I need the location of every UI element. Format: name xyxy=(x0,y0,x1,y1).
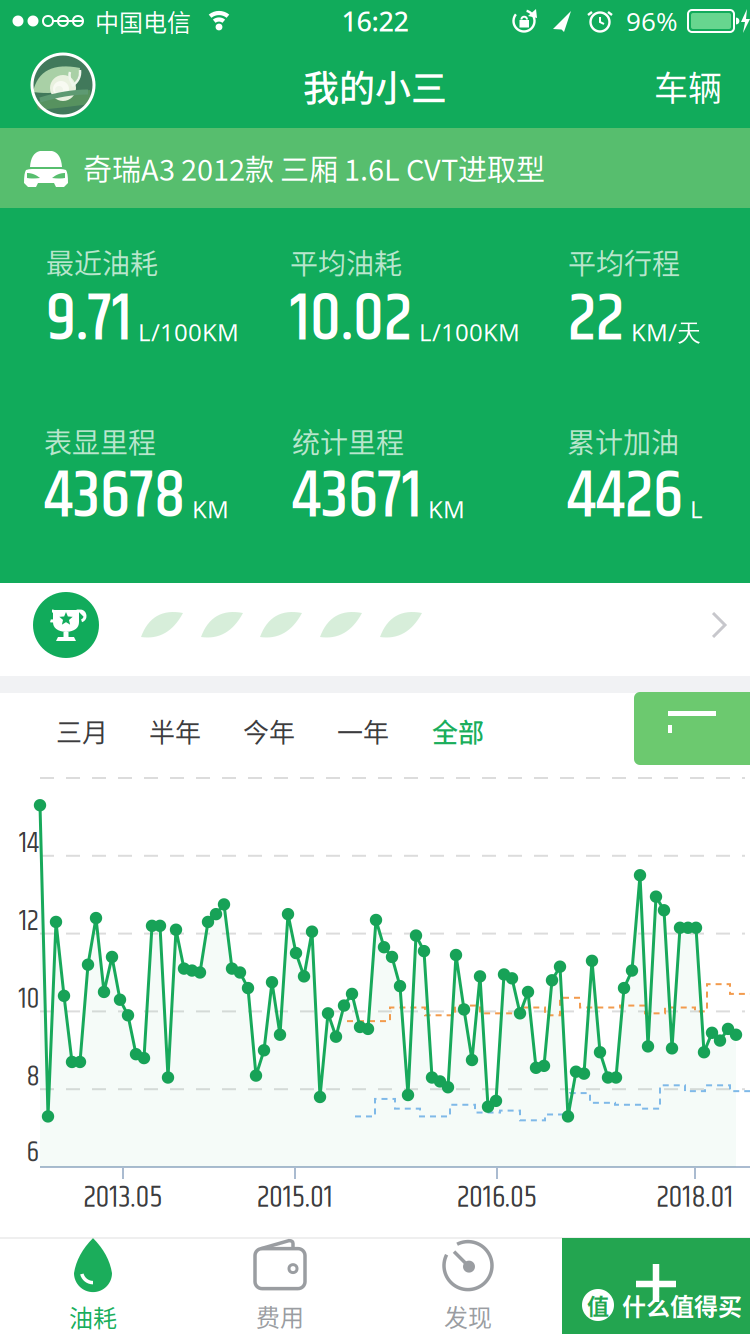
button[interactable]: 添加记录 xyxy=(562,1238,750,1334)
staticText: 43678 xyxy=(44,445,185,549)
button[interactable]: 发现 xyxy=(374,1238,561,1334)
staticText: 值 xyxy=(587,1289,609,1321)
staticText: L xyxy=(690,493,703,525)
staticText: 平均行程 xyxy=(568,242,680,282)
staticText: 2018.01 xyxy=(656,1174,733,1222)
staticText: 16:22 xyxy=(341,3,408,39)
staticText: 2013.05 xyxy=(83,1174,162,1222)
staticText: 43671 xyxy=(292,445,422,549)
staticText: 96% xyxy=(626,3,678,39)
staticText: 10.02 xyxy=(290,268,412,372)
button[interactable]: 成就 xyxy=(0,583,750,667)
staticText: L/100KM xyxy=(419,316,520,348)
staticText: KM xyxy=(192,493,229,525)
button[interactable]: 一年 xyxy=(320,701,406,761)
button[interactable]: 今年 xyxy=(226,701,312,761)
staticText: 6 xyxy=(26,1131,39,1175)
staticText: 今年 xyxy=(243,712,295,750)
button[interactable]: 我的 xyxy=(30,52,96,118)
staticText: 2016.05 xyxy=(457,1174,537,1222)
staticText: 油耗 xyxy=(69,1299,117,1334)
button[interactable]: 油耗 xyxy=(0,1238,186,1334)
staticText: KM xyxy=(428,493,465,525)
staticText: 统计里程 xyxy=(292,421,404,461)
staticText: 平均油耗 xyxy=(290,242,402,282)
staticText: 全部 xyxy=(432,712,484,750)
staticText: 累计加油 xyxy=(567,421,679,461)
staticText: 9.71 xyxy=(46,268,132,372)
button[interactable]: 图表设置 xyxy=(634,692,750,765)
staticText: 一年 xyxy=(337,712,389,750)
staticText: 什么值得买 xyxy=(622,1288,742,1322)
staticText: 4426 xyxy=(567,445,683,549)
staticText: 中国电信 xyxy=(95,4,191,38)
button[interactable]: 费用 xyxy=(186,1238,373,1334)
staticText: L/100KM xyxy=(138,316,239,348)
staticText: 8 xyxy=(26,1055,39,1099)
staticText: 14 xyxy=(19,822,39,866)
staticText: 三月 xyxy=(56,712,108,750)
staticText: 12 xyxy=(19,899,39,944)
staticText: 10 xyxy=(18,977,39,1021)
staticText: 半年 xyxy=(149,712,201,750)
staticText: 奇瑞A3 2012款 三厢 1.6L CVT进取型 xyxy=(83,147,545,189)
button[interactable]: 全部 xyxy=(415,701,501,761)
button[interactable]: 三月 xyxy=(39,701,125,761)
staticText: 2015.01 xyxy=(257,1174,333,1222)
staticText: 最近油耗 xyxy=(46,242,158,282)
button[interactable]: 车辆 xyxy=(633,51,743,121)
staticText: 表显里程 xyxy=(44,421,156,461)
staticText: 发现 xyxy=(444,1299,492,1333)
button[interactable]: 奇瑞A3 2012款 三厢 1.6L CVT进取型 xyxy=(0,128,750,208)
staticText: 我的小三 xyxy=(303,60,447,112)
staticText: KM/天 xyxy=(631,316,701,348)
button[interactable]: 半年 xyxy=(132,701,218,761)
staticText: 费用 xyxy=(256,1299,304,1333)
staticText: 车辆 xyxy=(654,61,722,111)
staticText: 22 xyxy=(568,268,624,372)
